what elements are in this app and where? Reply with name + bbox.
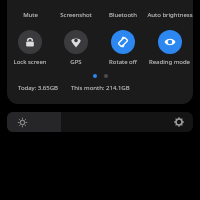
button[interactable]: Screenshot <box>53 0 99 21</box>
staticText: Today: 3.65GB <box>18 84 59 92</box>
button[interactable]: GPS <box>53 30 99 70</box>
button[interactable]: Auto brightness <box>146 0 193 21</box>
button[interactable]: Reading mode <box>146 30 193 70</box>
staticText: Rotate off <box>109 58 137 66</box>
button[interactable]: Bluetooth <box>99 0 146 21</box>
staticText: Bluetooth <box>109 11 137 19</box>
other: Brightness <box>18 118 27 127</box>
staticText: This month: 214.1GB <box>71 84 130 92</box>
staticText: Lock screen <box>13 58 47 66</box>
staticText: Mute <box>23 11 38 19</box>
button[interactable]: Brightness <box>7 112 193 132</box>
staticText: Reading mode <box>149 58 190 66</box>
staticText: Auto brightness <box>147 11 193 19</box>
button[interactable]: Mute <box>7 0 53 21</box>
staticText: GPS <box>70 58 82 66</box>
staticText: Screenshot <box>60 11 92 19</box>
button[interactable]: Rotate off <box>99 30 146 70</box>
button[interactable]: Lock screen <box>7 30 53 70</box>
button[interactable]: Settings <box>174 117 184 127</box>
